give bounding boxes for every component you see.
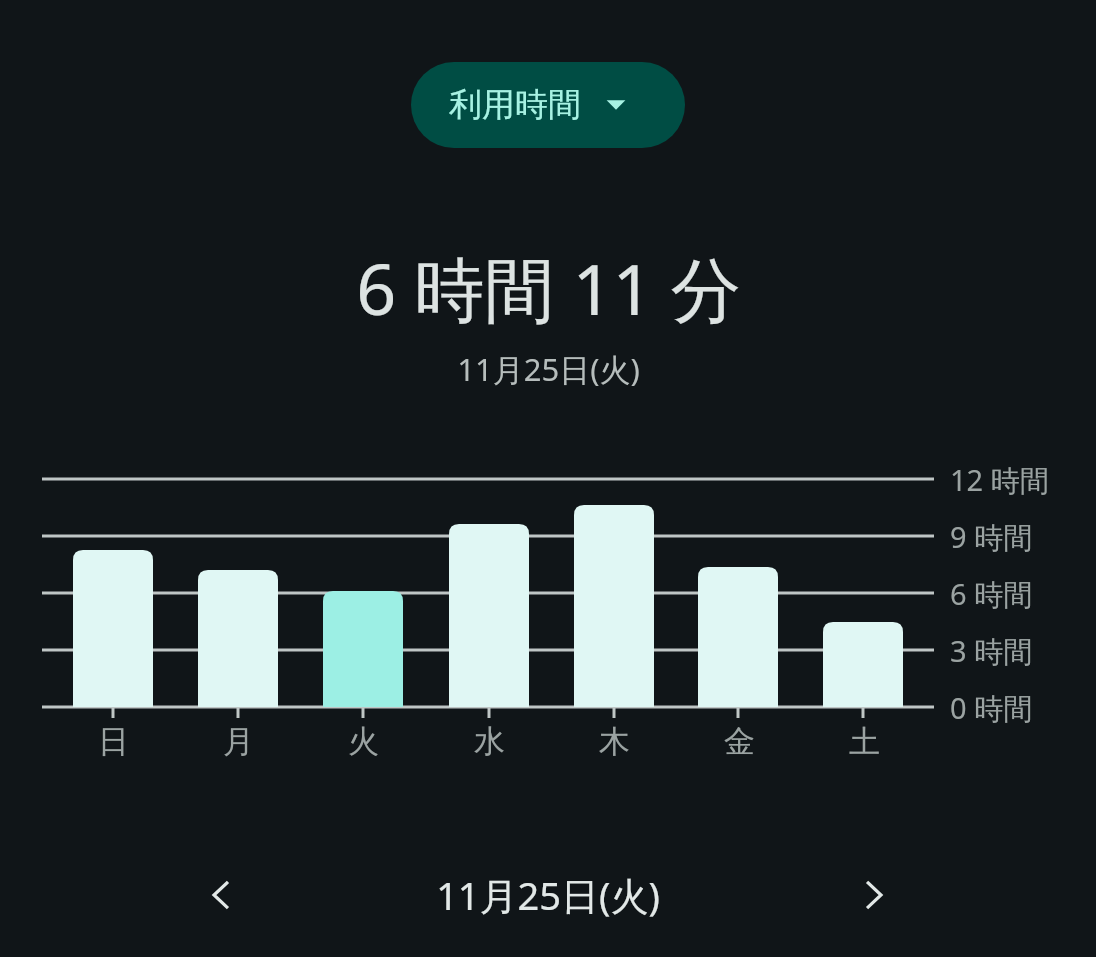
staticText: 利用時間	[449, 84, 581, 126]
staticText: 金	[724, 722, 755, 761]
button[interactable]: 利用時間	[411, 62, 685, 148]
staticText: 11月25日(火)	[457, 348, 640, 390]
staticText: 木	[599, 722, 630, 761]
staticText: 12 時間	[950, 460, 1049, 500]
staticText: 11月25日(火)	[436, 869, 660, 921]
staticText: 0 時間	[950, 688, 1033, 728]
button[interactable]: 前の日	[182, 855, 262, 935]
staticText: 土	[849, 722, 880, 761]
staticText: 3 時間	[950, 631, 1033, 671]
button[interactable]: 次の日	[833, 855, 913, 935]
staticText: 火	[348, 722, 379, 761]
staticText: 9 時間	[950, 517, 1033, 557]
staticText: 日	[98, 722, 129, 761]
staticText: 水	[474, 722, 505, 761]
staticText: 6 時間	[950, 574, 1033, 614]
staticText: 月	[223, 722, 254, 761]
staticText: 6 時間 11 分	[356, 240, 741, 336]
